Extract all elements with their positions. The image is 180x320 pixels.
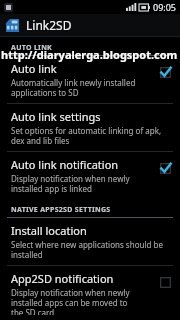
staticText: http://diaryalerga.blogspot.com [1,47,178,62]
staticText: Auto link notification [11,157,119,172]
staticText: Display notification when newly installe… [11,287,130,315]
other: Link2SD app icon [6,19,19,32]
button[interactable]: Auto link settings [0,104,180,151]
staticText: NATIVE APPS2SD SETTINGS [11,205,111,215]
button[interactable]: Auto link [0,56,180,103]
button[interactable]: App2SD notification [0,266,180,320]
staticText: Display notification when newly installe… [11,173,130,194]
staticText: App2SD notification [11,271,114,286]
button[interactable]: Disabled checkbox [159,276,172,289]
staticText: Auto link [11,61,57,76]
button[interactable]: Link2SD app icon [0,14,180,36]
staticText: Install location [11,223,87,238]
staticText: Link2SD [26,17,72,33]
button[interactable]: Install location [0,218,180,265]
button[interactable]: Enabled checkbox [159,66,172,79]
staticText: Select where new applications should be … [11,239,163,260]
staticText: Set options for automatic linking of apk… [11,125,162,146]
button[interactable]: Auto link notification [0,152,180,199]
staticText: AUTO LINK [11,43,53,53]
staticText: 09:05 [153,1,177,13]
staticText: Automatically link newly installed appli… [11,77,136,98]
staticText: Auto link settings [11,109,101,124]
button[interactable]: Enabled checkbox [159,162,172,175]
